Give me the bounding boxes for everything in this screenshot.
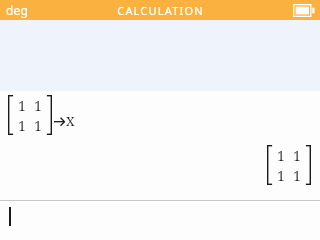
staticText: 1 [34,116,42,135]
staticText: 1 [277,166,285,185]
staticText: 1 [277,146,285,165]
staticText: 1 [293,166,301,185]
staticText: X [66,112,75,130]
button[interactable]: 1 [8,95,75,135]
staticText: 1 [34,96,42,115]
button[interactable]: deg [6,2,28,18]
button[interactable] [0,201,320,240]
staticText: CALCULATION [117,3,204,18]
button[interactable]: 1 [267,145,311,185]
staticText: 1 [293,146,301,165]
staticText: 1 [18,96,26,115]
staticText: 1 [18,116,26,135]
button[interactable]: Battery [293,4,315,17]
